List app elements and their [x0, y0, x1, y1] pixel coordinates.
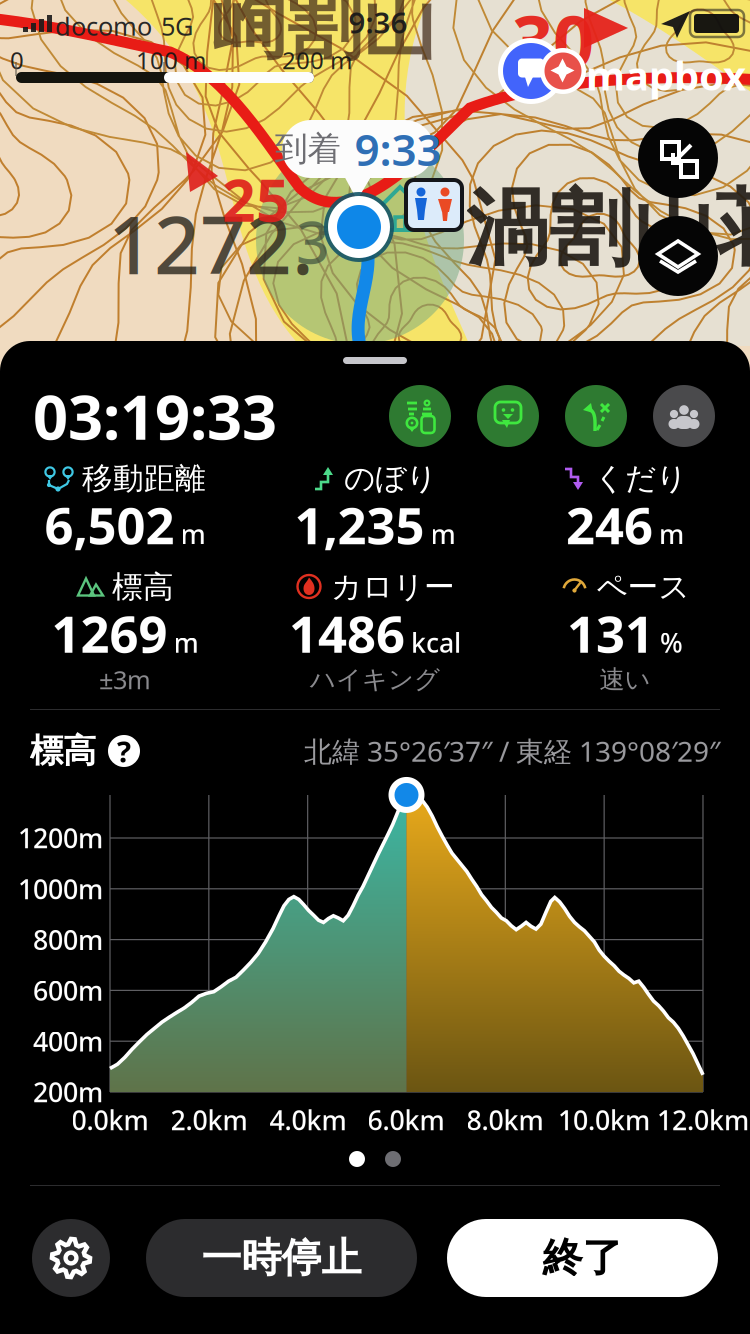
staticText: 4.0km — [269, 1102, 346, 1138]
staticText: 1486 — [289, 599, 405, 667]
staticText: m — [659, 516, 684, 551]
staticText: 5G — [161, 9, 193, 43]
staticText: 1000m — [18, 871, 103, 906]
button[interactable]: Messages — [477, 385, 539, 447]
staticText: 標高 — [112, 568, 174, 606]
staticText: 25 — [222, 160, 290, 238]
staticText: 移動距離 — [82, 460, 206, 497]
staticText: 1272. — [108, 190, 314, 296]
staticText: 03:19:33 — [33, 375, 277, 457]
button[interactable]: Map layers — [638, 216, 718, 296]
button[interactable]: Elevation help — [108, 735, 140, 767]
staticText: 100 m — [136, 44, 206, 76]
staticText: 峋割山 — [212, 0, 437, 72]
button[interactable]: Fit route to screen — [638, 118, 718, 198]
staticText: 9:33 — [354, 120, 441, 178]
button[interactable]: Plan — [389, 385, 451, 447]
staticText: 246 — [566, 491, 653, 558]
staticText: くだり — [594, 460, 687, 497]
staticText: 0 — [10, 44, 24, 76]
staticText: docomo — [55, 9, 152, 43]
staticText: 標高 — [30, 730, 96, 771]
staticText: ペース — [596, 568, 689, 606]
staticText: のぼり — [344, 460, 437, 497]
staticText: 30 — [512, 0, 594, 88]
button[interactable]: 一時停止 — [146, 1219, 417, 1297]
staticText: 1269 — [51, 599, 167, 667]
staticText: 10.0km — [558, 1102, 650, 1138]
staticText: 到着 — [274, 128, 340, 169]
staticText: 400m — [33, 1023, 103, 1059]
staticText: 131 — [567, 599, 654, 667]
staticText: 600m — [33, 973, 103, 1008]
staticText: 3 — [296, 202, 330, 280]
staticText: ? — [117, 731, 131, 770]
staticText: 一時停止 — [201, 1233, 361, 1282]
staticText: 12.0km — [657, 1102, 749, 1138]
staticText: 200m — [33, 1074, 103, 1110]
button[interactable]: Settings — [32, 1219, 110, 1297]
staticText: 1,235 — [294, 491, 424, 558]
staticText: 800m — [33, 922, 103, 957]
staticText: m — [173, 625, 198, 660]
staticText: % — [660, 625, 683, 660]
button[interactable]: Members — [653, 385, 715, 447]
staticText: m — [430, 516, 455, 551]
staticText: 6.0km — [367, 1102, 444, 1138]
staticText: 200 m — [282, 44, 352, 76]
staticText: 2.0km — [170, 1102, 247, 1138]
staticText: ハイキング — [310, 664, 440, 695]
staticText: カロリー — [331, 568, 455, 606]
staticText: 1200m — [18, 820, 103, 856]
staticText: 渦割山荘 — [466, 178, 750, 279]
staticText: mapbox — [586, 48, 746, 101]
staticText: 速い — [599, 664, 650, 695]
staticText: kcal — [411, 625, 461, 660]
button[interactable]: Reroute — [565, 385, 627, 447]
staticText: 北緯 35°26′37″ / 東経 139°08′29″ — [304, 732, 720, 770]
staticText: 8.0km — [466, 1102, 543, 1138]
staticText: 6,502 — [44, 491, 174, 558]
staticText: 0.0km — [71, 1102, 148, 1138]
staticText: ±3m — [99, 663, 151, 696]
staticText: 終了 — [542, 1233, 622, 1282]
staticText: 9:36 — [348, 2, 407, 41]
staticText: m — [180, 516, 205, 551]
button[interactable]: 終了 — [447, 1219, 718, 1297]
